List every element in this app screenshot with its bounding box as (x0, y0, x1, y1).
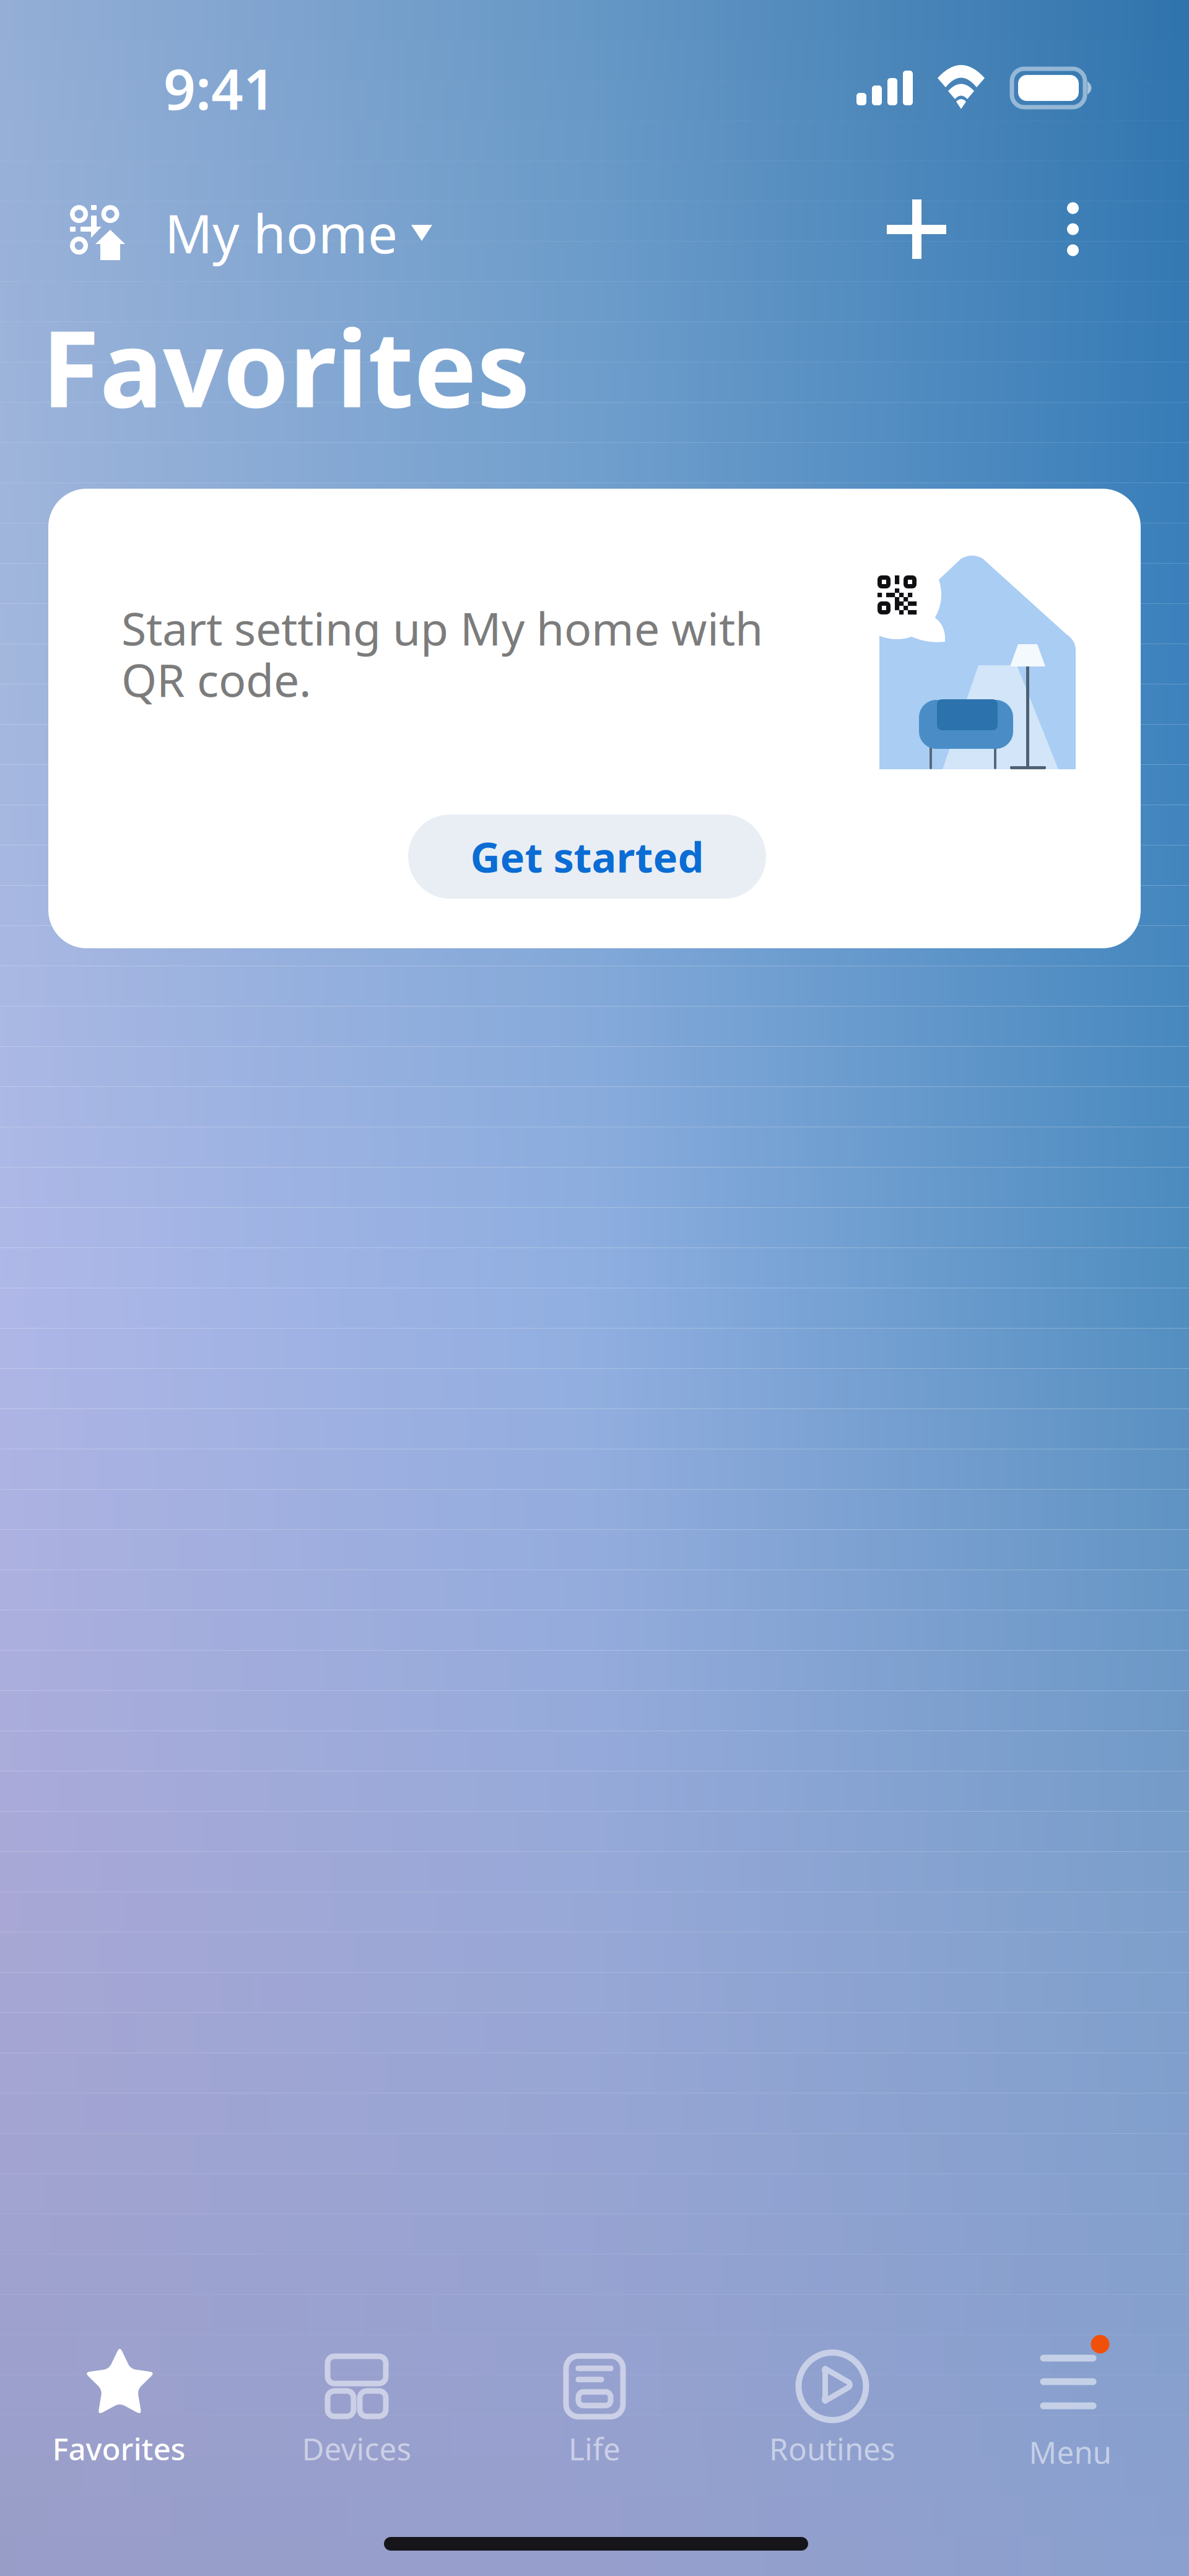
staticText: 9:41 (163, 51, 276, 125)
staticText: QR code. (121, 649, 311, 709)
button[interactable]: Life (476, 2332, 713, 2487)
staticText: Devices (302, 2428, 412, 2469)
button[interactable]: Favorites (0, 2332, 238, 2487)
button[interactable]: Menu (951, 2332, 1189, 2487)
button[interactable]: Get started (408, 814, 766, 899)
button[interactable]: Add (872, 185, 961, 274)
staticText: Get started (470, 829, 704, 884)
staticText: Life (568, 2428, 621, 2469)
staticText: Start setting up My home with (121, 598, 763, 658)
staticText: Favorites (41, 296, 530, 436)
staticText: My home (165, 198, 398, 268)
staticText: Menu (1029, 2431, 1111, 2472)
staticText: Favorites (52, 2428, 185, 2469)
button[interactable]: More options (1050, 185, 1096, 273)
button[interactable]: Routines (713, 2332, 951, 2487)
button[interactable]: Devices (238, 2332, 476, 2487)
button[interactable]: My home (68, 182, 432, 277)
staticText: Routines (769, 2428, 895, 2469)
